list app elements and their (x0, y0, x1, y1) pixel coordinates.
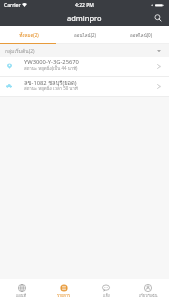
staticText: แจ้ง (103, 293, 110, 299)
staticText: กลุ่มเริ่มต้น(2) (5, 47, 35, 55)
staticText: ทั้งหมด(2) (19, 32, 39, 39)
button[interactable]: Search (147, 10, 169, 26)
staticText: สถานะ หยุดนิ่ง เวลา 50 นาที (24, 85, 78, 92)
staticText: รายการ (57, 293, 71, 299)
staticText: ออฟไลน์(0) (130, 32, 152, 39)
staticText: สถานะ หยุดนิ่ง(เป็น 44 นาที) (24, 65, 78, 72)
button[interactable]: เกี่ยวกับฉัน (127, 279, 169, 300)
staticText: YW3000-Y-3G-25670 (24, 58, 79, 66)
button[interactable]: ออฟไลน์(0) (113, 26, 169, 44)
staticText: ลข-1082 ชลบุรี(ยอด) (24, 78, 77, 87)
staticText: เกี่ยวกับฉัน (139, 293, 158, 299)
button[interactable]: ทั้งหมด(2) (0, 26, 57, 44)
button[interactable]: แผนที่ (0, 279, 43, 300)
button[interactable]: ลข-1082 ชลบุรี(ยอด) (0, 77, 169, 97)
staticText: ออนไลน์(2) (74, 32, 96, 39)
staticText: 4:22 PM (75, 2, 94, 9)
staticText: Carrier (4, 2, 21, 9)
button[interactable]: ออนไลน์(2) (57, 26, 113, 44)
button[interactable]: กลุ่มเริ่มต้น(2) (0, 44, 169, 57)
button[interactable]: YW3000-Y-3G-25670 (0, 57, 169, 77)
button[interactable]: แจ้ง (85, 279, 127, 300)
staticText: แผนที่ (16, 293, 27, 299)
button[interactable]: รายการ (43, 279, 85, 300)
staticText: adminpro (67, 13, 102, 23)
